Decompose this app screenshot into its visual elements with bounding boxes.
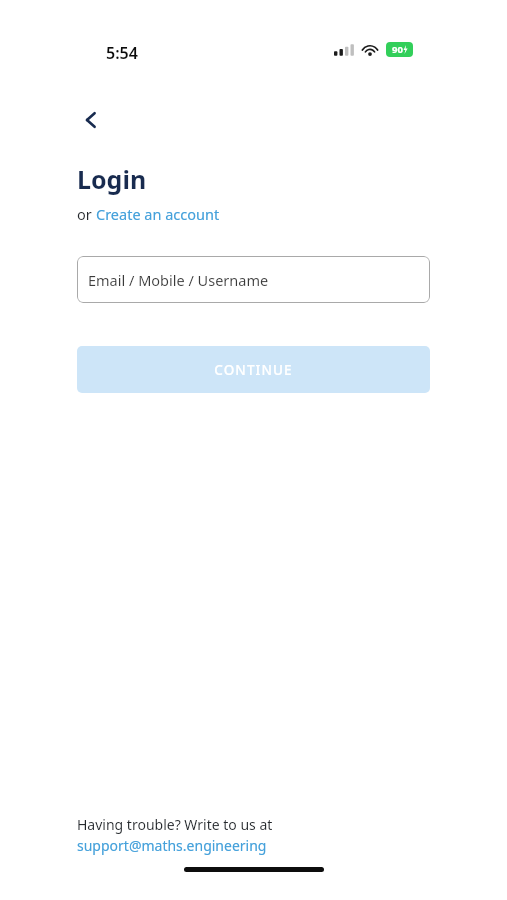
staticText: Email / Mobile / Username — [88, 270, 269, 290]
staticText: support@maths.engineering — [77, 836, 267, 855]
button[interactable]: Back — [75, 104, 107, 136]
staticText: or — [77, 204, 96, 224]
button[interactable]: Create an account — [96, 204, 220, 224]
staticText: CONTINUE — [214, 361, 293, 379]
staticText: Having trouble? Write to us at — [77, 815, 273, 834]
staticText: 5:54 — [106, 42, 138, 64]
button[interactable]: support@maths.engineering — [77, 836, 267, 855]
button[interactable]: Email / Mobile / Username — [77, 256, 430, 303]
staticText: Create an account — [96, 204, 220, 224]
staticText: 90 — [392, 43, 403, 56]
button[interactable]: CONTINUE — [77, 346, 430, 393]
staticText: Login — [77, 162, 147, 196]
